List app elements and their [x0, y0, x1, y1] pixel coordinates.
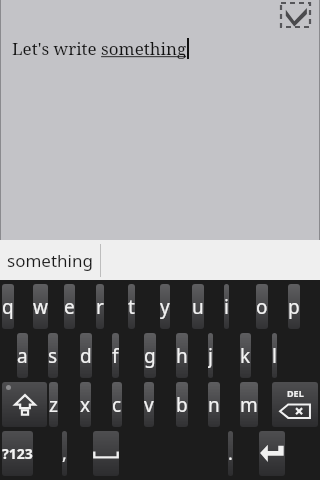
- button[interactable]: a: [17, 333, 28, 378]
- button[interactable]: ?123: [2, 431, 33, 476]
- staticText: l: [272, 343, 277, 369]
- button[interactable]: r: [96, 284, 104, 329]
- button[interactable]: z: [49, 382, 58, 427]
- button[interactable]: t: [128, 284, 135, 329]
- staticText: v: [144, 392, 154, 418]
- button[interactable]: e: [64, 284, 75, 329]
- staticText: h: [176, 343, 188, 369]
- staticText: f: [112, 343, 119, 369]
- staticText: s: [48, 343, 58, 369]
- staticText: u: [192, 294, 204, 320]
- staticText: y: [160, 294, 170, 320]
- staticText: .: [228, 441, 233, 466]
- button[interactable]: w: [33, 284, 48, 329]
- staticText: DEL: [287, 387, 304, 399]
- staticText: a: [17, 343, 28, 369]
- staticText: something: [7, 249, 93, 272]
- button[interactable]: Done: [279, 2, 313, 32]
- button[interactable]: l: [272, 333, 277, 378]
- button[interactable]: Shift: [2, 382, 47, 427]
- staticText: t: [128, 294, 135, 320]
- button[interactable]: c: [112, 382, 122, 427]
- button[interactable]: y: [160, 284, 170, 329]
- staticText: m: [240, 392, 258, 418]
- staticText: x: [80, 392, 91, 418]
- button[interactable]: Enter: [259, 431, 285, 476]
- staticText: g: [144, 343, 156, 369]
- button[interactable]: g: [144, 333, 156, 378]
- button[interactable]: k: [240, 333, 251, 378]
- button[interactable]: n: [208, 382, 220, 427]
- button[interactable]: Space: [93, 431, 119, 476]
- staticText: ?123: [2, 444, 33, 463]
- button[interactable]: b: [176, 382, 188, 427]
- staticText: r: [96, 294, 104, 320]
- staticText: Let's write something: [12, 37, 187, 60]
- button[interactable]: x: [80, 382, 91, 427]
- staticText: w: [33, 294, 48, 320]
- button[interactable]: something: [0, 240, 100, 280]
- staticText: d: [80, 343, 92, 369]
- staticText: j: [208, 343, 213, 369]
- staticText: q: [2, 294, 14, 320]
- staticText: k: [240, 343, 251, 369]
- staticText: c: [112, 392, 122, 418]
- staticText: e: [64, 294, 75, 320]
- button[interactable]: v: [144, 382, 154, 427]
- button[interactable]: u: [192, 284, 204, 329]
- button[interactable]: f: [112, 333, 119, 378]
- button[interactable]: d: [80, 333, 92, 378]
- staticText: n: [208, 392, 220, 418]
- button[interactable]: i: [224, 284, 229, 329]
- staticText: o: [256, 294, 268, 320]
- button[interactable]: .: [228, 431, 233, 476]
- button[interactable]: j: [208, 333, 213, 378]
- button[interactable]: ,: [62, 431, 67, 476]
- staticText: ,: [62, 441, 67, 466]
- button[interactable]: Delete: [272, 382, 318, 427]
- button[interactable]: s: [48, 333, 58, 378]
- button[interactable]: m: [240, 382, 258, 427]
- button[interactable]: o: [256, 284, 268, 329]
- button[interactable]: h: [176, 333, 188, 378]
- button[interactable]: q: [2, 284, 14, 329]
- staticText: i: [224, 294, 229, 320]
- staticText: z: [49, 392, 58, 418]
- button[interactable]: p: [288, 284, 300, 329]
- staticText: b: [176, 392, 188, 418]
- staticText: p: [288, 294, 300, 320]
